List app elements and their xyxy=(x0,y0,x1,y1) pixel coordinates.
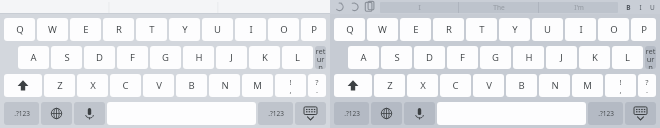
button[interactable]: Dictation xyxy=(74,102,105,125)
button[interactable]: ! , xyxy=(275,74,306,97)
button[interactable]: H xyxy=(183,46,214,69)
button[interactable]: X xyxy=(407,74,438,97)
button[interactable]: Switch language xyxy=(371,102,402,125)
staticText: ? . xyxy=(645,77,649,95)
staticText: A xyxy=(360,51,367,64)
button[interactable]: .?123 xyxy=(334,102,369,125)
staticText: N xyxy=(221,79,229,92)
button[interactable]: O xyxy=(268,18,299,41)
button[interactable]: return xyxy=(315,46,326,69)
button[interactable]: Q xyxy=(4,18,35,41)
button[interactable]: Hide keyboard xyxy=(625,102,656,125)
button[interactable]: I xyxy=(235,18,266,41)
button[interactable]: T xyxy=(136,18,167,41)
button[interactable]: Z xyxy=(44,74,75,97)
button[interactable]: P xyxy=(631,18,656,41)
button[interactable]: H xyxy=(513,46,544,69)
button[interactable]: J xyxy=(216,46,247,69)
button[interactable]: J xyxy=(546,46,577,69)
button[interactable]: S xyxy=(381,46,412,69)
button[interactable]: Y xyxy=(499,18,530,41)
button[interactable]: L xyxy=(282,46,313,69)
button[interactable]: Z xyxy=(374,74,405,97)
staticText: F xyxy=(460,51,465,64)
button[interactable]: Paste xyxy=(362,1,377,13)
button[interactable]: B xyxy=(176,74,207,97)
button[interactable]: V xyxy=(143,74,174,97)
button[interactable]: Shift xyxy=(4,74,42,97)
button[interactable]: O xyxy=(598,18,629,41)
button[interactable]: P xyxy=(301,18,326,41)
button[interactable]: X xyxy=(77,74,108,97)
button[interactable]: Redo xyxy=(347,1,362,13)
button[interactable]: Shift xyxy=(334,74,372,97)
button[interactable]: I'm xyxy=(539,2,618,13)
button[interactable]: R xyxy=(103,18,134,41)
staticText: H xyxy=(195,51,203,64)
button[interactable]: .?123 xyxy=(588,102,623,125)
button[interactable]: .?123 xyxy=(4,102,39,125)
button[interactable]: Switch language xyxy=(41,102,72,125)
button[interactable]: ? . xyxy=(638,74,656,97)
button[interactable]: K xyxy=(249,46,280,69)
staticText: T xyxy=(149,23,155,36)
button[interactable]: Dictation xyxy=(404,102,435,125)
button[interactable]: return xyxy=(645,46,656,69)
staticText: W xyxy=(378,23,387,36)
staticText: C xyxy=(122,79,129,92)
button[interactable]: E xyxy=(70,18,101,41)
button[interactable]: ? . xyxy=(308,74,326,97)
button[interactable]: C xyxy=(110,74,141,97)
button[interactable]: B xyxy=(622,1,634,13)
button[interactable]: Undo xyxy=(332,1,347,13)
button[interactable]: Y xyxy=(169,18,200,41)
button[interactable]: W xyxy=(367,18,398,41)
button[interactable]: N xyxy=(209,74,240,97)
staticText: V xyxy=(486,79,492,92)
staticText: K xyxy=(592,51,598,64)
button[interactable]: U xyxy=(532,18,563,41)
button[interactable]: W xyxy=(37,18,68,41)
button[interactable]: T xyxy=(466,18,497,41)
button[interactable]: L xyxy=(612,46,643,69)
button[interactable]: E xyxy=(400,18,431,41)
staticText: O xyxy=(610,23,618,36)
button[interactable]: K xyxy=(579,46,610,69)
button[interactable]: F xyxy=(447,46,478,69)
button[interactable]: B xyxy=(506,74,537,97)
staticText: U xyxy=(544,23,551,36)
button[interactable]: D xyxy=(84,46,115,69)
button[interactable]: R xyxy=(433,18,464,41)
button[interactable]: Hide keyboard xyxy=(295,102,326,125)
button[interactable]: A xyxy=(348,46,379,69)
button[interactable]: S xyxy=(51,46,82,69)
button[interactable]: G xyxy=(150,46,181,69)
button[interactable]: F xyxy=(117,46,148,69)
staticText: A xyxy=(30,51,37,64)
button[interactable]: N xyxy=(539,74,570,97)
button[interactable]: .?123 xyxy=(258,102,293,125)
button[interactable]: A xyxy=(18,46,49,69)
staticText: R xyxy=(446,23,452,36)
staticText: Z xyxy=(57,79,63,92)
button[interactable]: V xyxy=(473,74,504,97)
staticText: L xyxy=(295,51,300,64)
button[interactable]: I xyxy=(565,18,596,41)
button[interactable]: G xyxy=(480,46,511,69)
staticText: return xyxy=(645,46,656,69)
button[interactable]: C xyxy=(440,74,471,97)
button[interactable]: D xyxy=(414,46,445,69)
button[interactable]: Q xyxy=(334,18,365,41)
button[interactable]: The xyxy=(459,2,538,13)
button[interactable]: M xyxy=(242,74,273,97)
button[interactable]: ! , xyxy=(605,74,636,97)
button[interactable]: U xyxy=(202,18,233,41)
button[interactable]: I xyxy=(634,1,646,13)
staticText: P xyxy=(311,23,317,36)
button[interactable]: U xyxy=(646,1,658,13)
staticText: H xyxy=(525,51,533,64)
button[interactable]: M xyxy=(572,74,603,97)
